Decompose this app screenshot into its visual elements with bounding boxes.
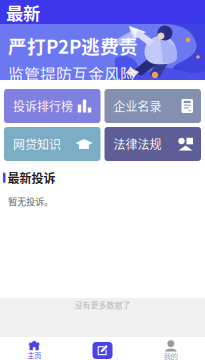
button[interactable]: 发布投诉 (68, 337, 137, 360)
staticText: 严打P2P逃费责 (8, 32, 138, 59)
button[interactable]: 网贷知识 (4, 127, 100, 161)
staticText: 法律法规 (113, 135, 161, 153)
button[interactable]: 主页 (0, 337, 68, 360)
button[interactable]: 法律法规 (104, 127, 201, 161)
staticText: 没有更多数据了 (74, 299, 130, 311)
staticText: 暂无投诉。 (8, 194, 53, 208)
staticText: 主页 (27, 349, 41, 360)
staticText: 投诉排行榜 (13, 97, 73, 115)
staticText: 企业名录 (113, 97, 161, 115)
button[interactable]: 我的 (137, 337, 205, 360)
staticText: 最新 (6, 0, 40, 25)
staticText: 最新投诉 (7, 169, 55, 186)
button[interactable]: 企业名录 (104, 89, 201, 123)
staticText: 网贷知识 (13, 135, 61, 153)
button[interactable]: 投诉排行榜 (4, 89, 100, 123)
staticText: 我的 (164, 350, 178, 360)
staticText: 监管提防互金风险 (8, 62, 136, 85)
